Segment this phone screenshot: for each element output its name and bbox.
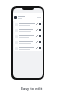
button[interactable]: Profile [13,13,43,21]
button[interactable]: Select [14,39,42,45]
staticText: Easy to edit [21,86,43,91]
button[interactable]: Select [14,33,42,39]
other: Edit [36,41,38,43]
other: Edit [36,47,38,49]
other: Edit [36,29,38,31]
other: Edit [36,35,38,37]
other: Profile [14,16,17,19]
button[interactable]: Select [14,21,42,27]
button[interactable]: Select [14,27,42,33]
button[interactable]: Select [14,45,42,51]
other: Edit [36,23,38,25]
